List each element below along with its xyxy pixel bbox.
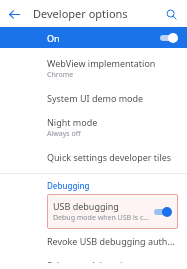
button[interactable]: Night mode — [0, 110, 187, 145]
staticText: Chrome — [47, 70, 74, 80]
button[interactable]: On — [0, 27, 187, 48]
staticText: Developer options — [33, 6, 128, 21]
staticText: On — [47, 32, 60, 44]
staticText: System UI demo mode — [47, 92, 144, 104]
staticText: Debugging — [47, 180, 90, 191]
staticText: WebView implementation — [47, 57, 156, 69]
button[interactable]: Revoke USB debugging authorisations — [0, 229, 187, 253]
staticText: Quick settings developer tiles — [47, 151, 172, 163]
staticText: Select mock location app — [47, 259, 152, 263]
staticText: Always off — [47, 129, 81, 139]
button[interactable]: Quick settings developer tiles — [0, 145, 187, 169]
button[interactable]: WebView implementation — [0, 51, 187, 86]
staticText: USB debugging — [53, 200, 119, 212]
staticText: Debug mode when USB is connected — [53, 213, 149, 223]
button[interactable]: Back — [5, 5, 23, 23]
staticText: Revoke USB debugging authorisations — [47, 235, 177, 247]
button[interactable]: Search — [162, 5, 180, 23]
staticText: Night mode — [47, 116, 98, 128]
button[interactable]: System UI demo mode — [0, 86, 187, 110]
button[interactable]: USB debugging — [47, 194, 178, 229]
button[interactable]: Select mock location app — [0, 253, 187, 269]
